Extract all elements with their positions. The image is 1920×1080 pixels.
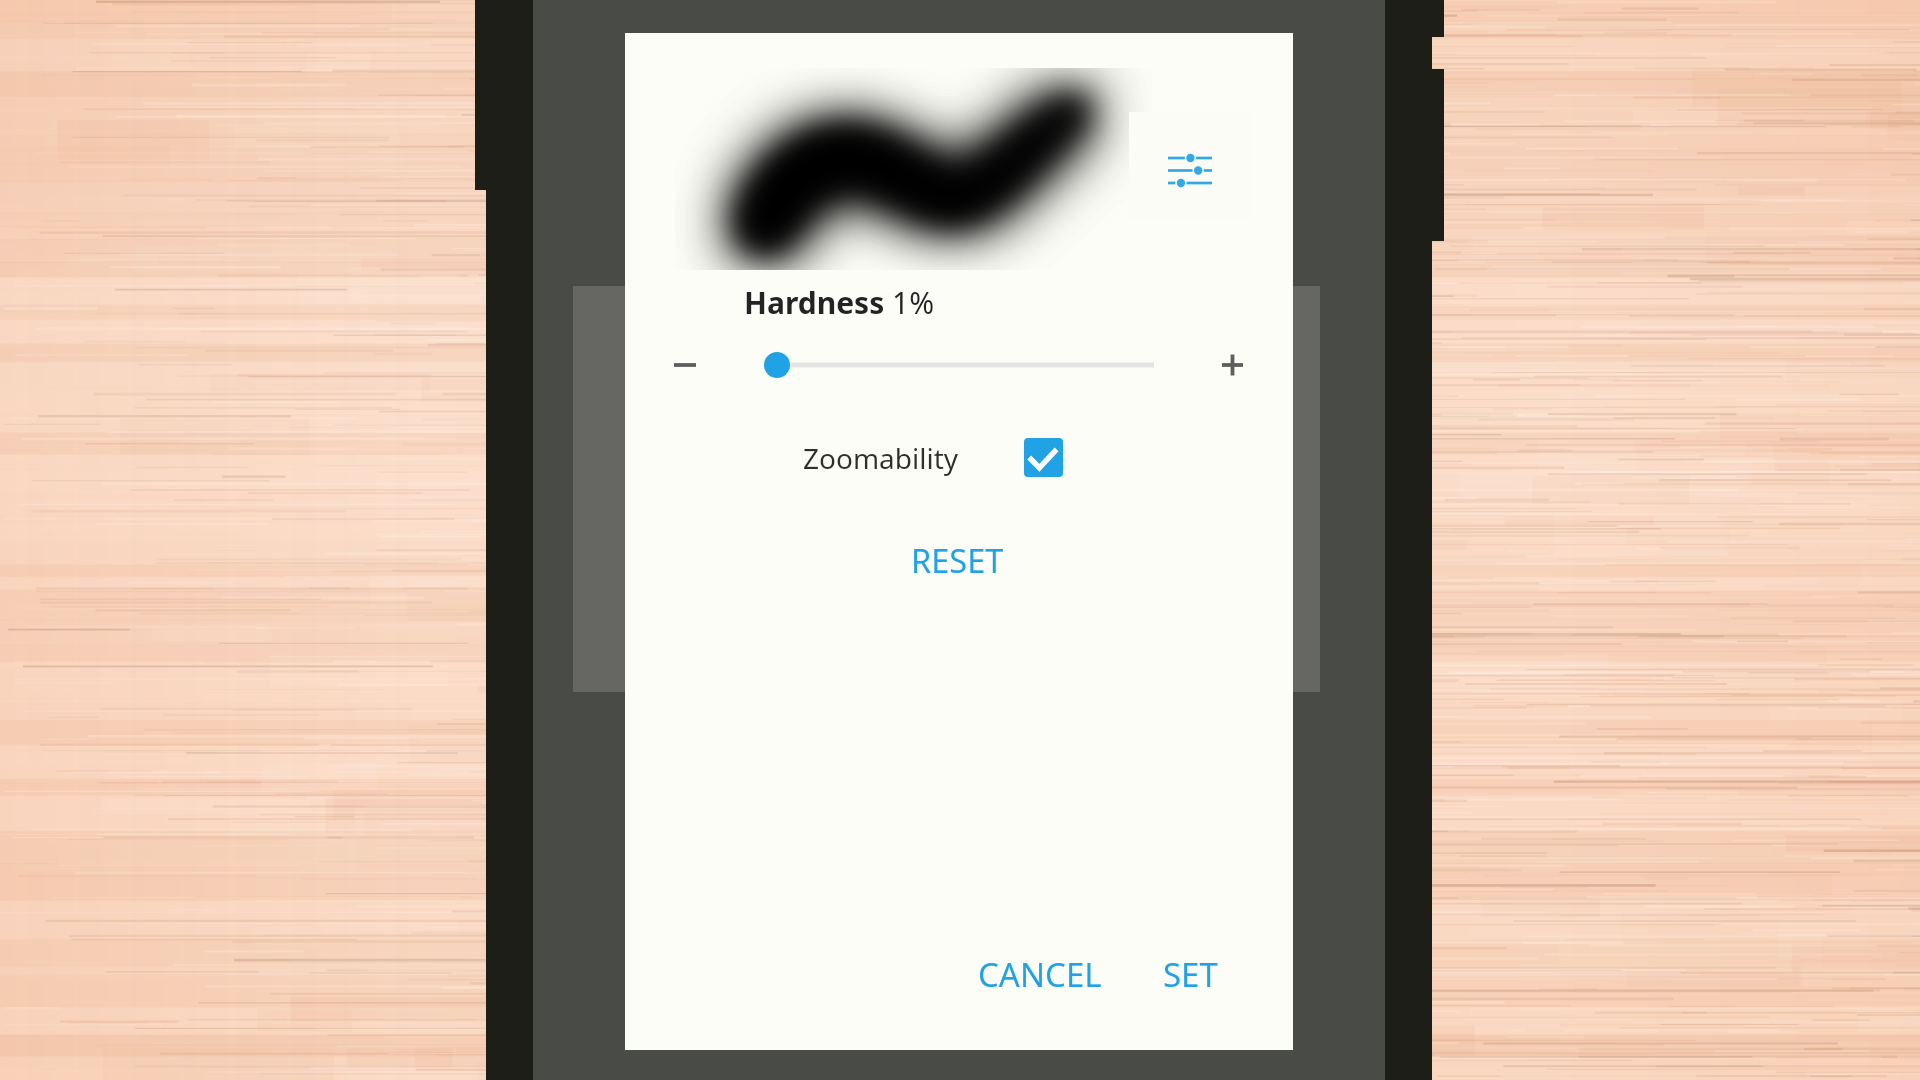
staticText: Zoomability xyxy=(803,439,959,477)
button[interactable]: Brush settings xyxy=(1129,112,1250,220)
staticText: SET xyxy=(1163,952,1218,997)
staticText: Hardness 1% xyxy=(744,282,935,323)
button[interactable]: Decrease hardness xyxy=(655,335,715,395)
button[interactable]: SET xyxy=(1143,938,1238,1011)
button[interactable]: Zoomability xyxy=(801,433,1065,513)
button[interactable]: Hardness slider xyxy=(745,335,1185,395)
staticText: CANCEL xyxy=(978,952,1102,997)
button[interactable]: CANCEL xyxy=(958,938,1122,1011)
button[interactable]: RESET xyxy=(891,524,1024,596)
button[interactable]: Increase hardness xyxy=(1203,335,1263,395)
staticText: RESET xyxy=(911,538,1004,582)
